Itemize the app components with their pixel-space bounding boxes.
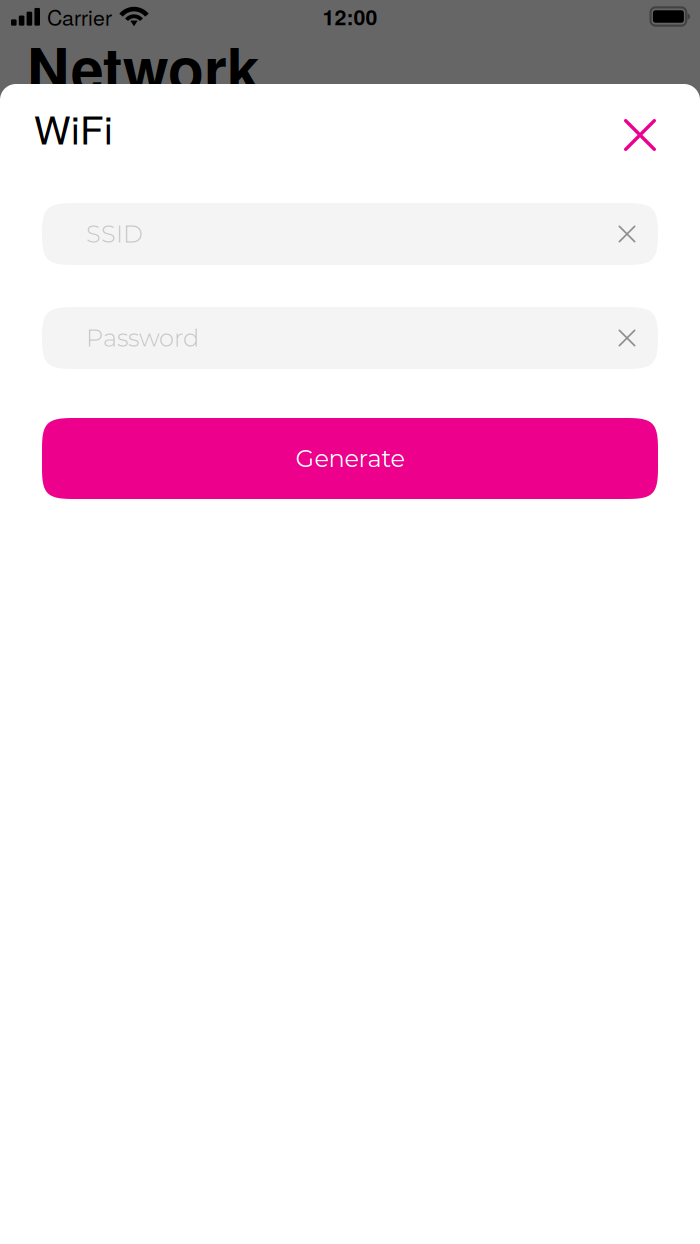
staticText: Carrier: [47, 1, 112, 32]
button[interactable]: Generate: [42, 418, 658, 499]
staticText: 12:00: [322, 1, 377, 32]
staticText: WiFi: [34, 100, 113, 155]
button[interactable]: Close: [613, 108, 667, 162]
button[interactable]: Clear Password: [605, 316, 649, 360]
staticText: Generate: [295, 444, 404, 473]
staticText: Password: [86, 323, 199, 353]
staticText: SSID: [86, 219, 143, 249]
button[interactable]: Clear SSID: [605, 212, 649, 256]
staticText: Network: [27, 25, 260, 109]
